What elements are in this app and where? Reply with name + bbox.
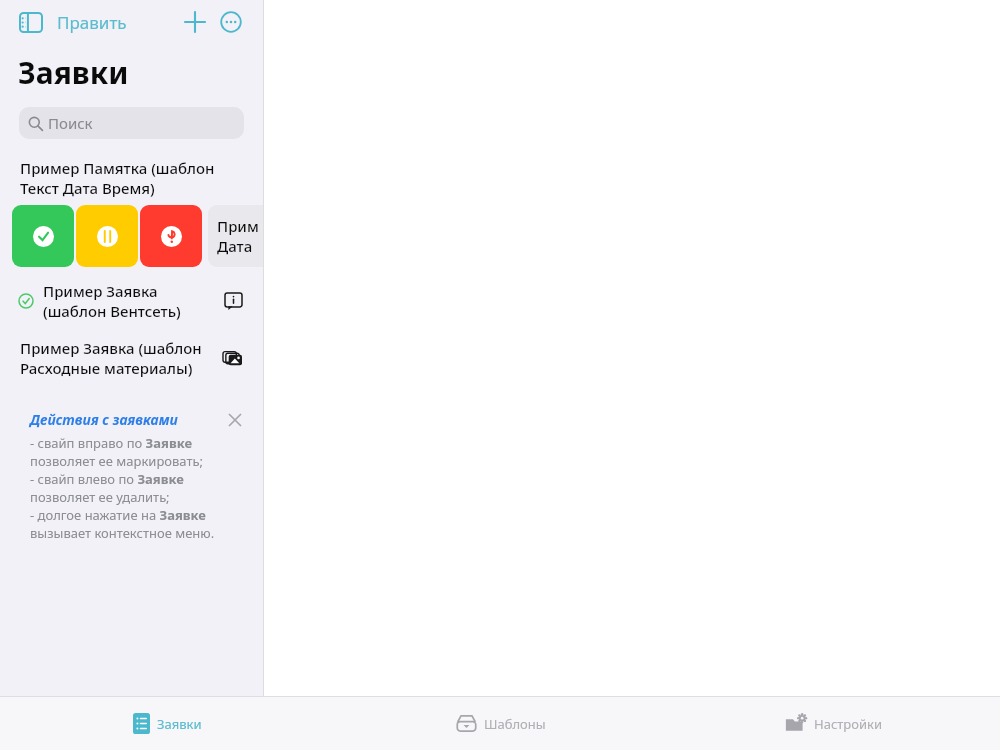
button[interactable]: Pause bbox=[76, 205, 138, 267]
button[interactable]: Mark done bbox=[12, 205, 74, 267]
staticText: позволяет ее маркировать; bbox=[30, 452, 203, 470]
staticText: Поиск bbox=[48, 113, 93, 133]
staticText: Прим Дата bbox=[217, 216, 259, 256]
button[interactable]: Пример Заявка (шаблон Вентсеть) bbox=[0, 281, 263, 321]
staticText: Пример Памятка (шаблон Текст Дата Время) bbox=[20, 158, 239, 198]
staticText: - долгое нажатие на Заявке bbox=[30, 506, 206, 524]
button[interactable]: Поиск bbox=[19, 107, 244, 139]
button[interactable]: Пример Заявка (шаблон Расходные материал… bbox=[0, 338, 263, 378]
staticText: Заявки bbox=[18, 52, 129, 93]
button[interactable]: Question bbox=[140, 205, 202, 267]
staticText: Шаблоны bbox=[484, 715, 546, 733]
button[interactable]: Add bbox=[181, 8, 209, 36]
staticText: Действия с заявками bbox=[30, 410, 225, 429]
staticText: Править bbox=[57, 11, 127, 34]
button[interactable]: Заявки bbox=[0, 697, 334, 750]
other: Note bbox=[223, 291, 243, 311]
button[interactable]: Прим Дата bbox=[208, 205, 263, 267]
button[interactable]: Настройки bbox=[667, 697, 1000, 750]
staticText: - свайп влево по Заявке bbox=[30, 470, 184, 488]
staticText: Заявки bbox=[157, 715, 202, 733]
button[interactable]: Toggle sidebar bbox=[18, 10, 44, 34]
button[interactable]: More options bbox=[217, 8, 245, 36]
staticText: - свайп вправо по Заявке bbox=[30, 434, 193, 452]
button[interactable]: Шаблоны bbox=[334, 697, 667, 750]
other: Photos bbox=[221, 347, 243, 369]
button[interactable]: Close bbox=[225, 410, 245, 430]
staticText: Настройки bbox=[814, 715, 883, 733]
button[interactable]: Править bbox=[57, 11, 127, 34]
staticText: позволяет ее удалить; bbox=[30, 488, 170, 506]
staticText: Пример Заявка (шаблон Вентсеть) bbox=[43, 281, 217, 321]
staticText: Пример Заявка (шаблон Расходные материал… bbox=[20, 338, 215, 378]
staticText: вызывает контекстное меню. bbox=[30, 524, 215, 542]
